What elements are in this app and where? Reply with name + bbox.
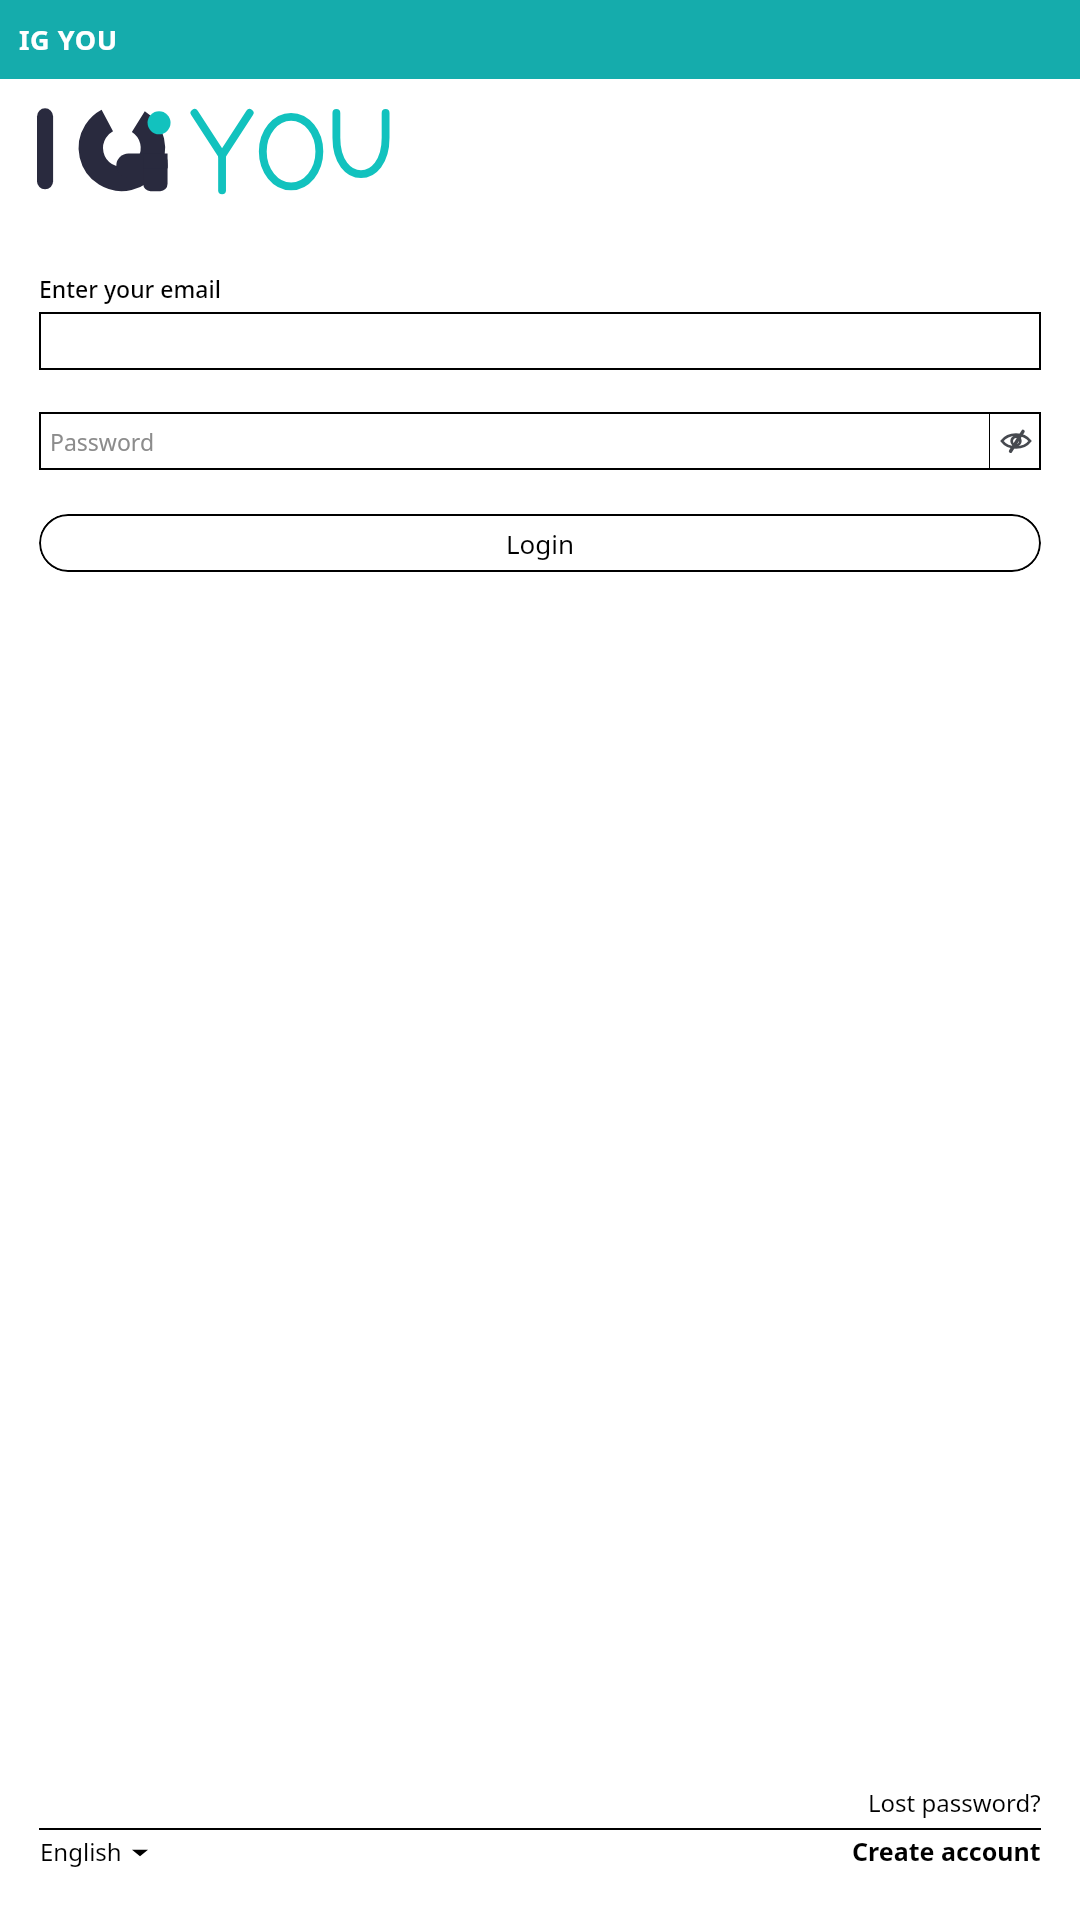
button[interactable]: Password	[39, 412, 989, 470]
button[interactable]: Create account	[852, 1834, 1041, 1868]
staticText: Login	[506, 526, 575, 561]
button[interactable]: English	[40, 1835, 148, 1868]
button[interactable]: Login	[39, 514, 1041, 572]
staticText: English	[40, 1835, 122, 1868]
button[interactable]	[39, 312, 1041, 370]
staticText: Password	[50, 426, 155, 457]
staticText: Enter your email	[39, 273, 221, 304]
staticText: IG YOU	[19, 21, 118, 58]
button[interactable]: Lost password?	[868, 1786, 1041, 1819]
button[interactable]: Show password	[990, 412, 1041, 470]
